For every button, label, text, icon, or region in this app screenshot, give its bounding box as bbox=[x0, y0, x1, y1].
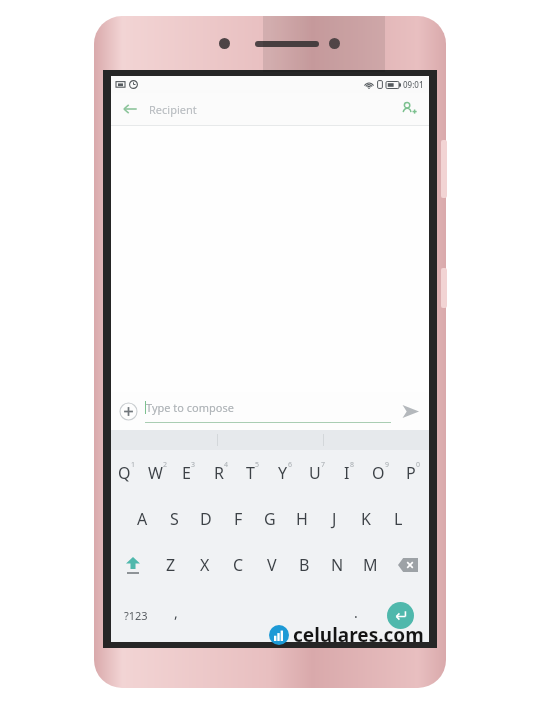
button[interactable]: M bbox=[354, 542, 387, 588]
staticText: K bbox=[361, 508, 371, 530]
staticText: 6 bbox=[288, 460, 293, 470]
staticText: 8 bbox=[350, 460, 355, 470]
button[interactable]: F bbox=[222, 496, 254, 542]
button[interactable]: N bbox=[321, 542, 354, 588]
staticText: C bbox=[233, 554, 244, 576]
button[interactable]: W bbox=[142, 450, 173, 496]
button[interactable]: Space bbox=[190, 588, 340, 642]
staticText: B bbox=[299, 554, 310, 576]
staticText: O bbox=[372, 462, 385, 484]
staticText: H bbox=[296, 508, 308, 530]
button[interactable]: A bbox=[126, 496, 158, 542]
staticText: P bbox=[406, 462, 416, 484]
button[interactable]: Q bbox=[111, 450, 142, 496]
button[interactable]: X bbox=[188, 542, 222, 588]
staticText: G bbox=[264, 508, 276, 530]
button[interactable]: V bbox=[255, 542, 288, 588]
button[interactable]: P bbox=[397, 450, 429, 496]
button[interactable]: H bbox=[286, 496, 318, 542]
button[interactable]: Add recipient bbox=[389, 93, 429, 125]
staticText: T bbox=[246, 462, 255, 484]
button[interactable]: B bbox=[288, 542, 321, 588]
staticText: W bbox=[148, 462, 163, 484]
staticText: M bbox=[363, 554, 378, 576]
button[interactable]: K bbox=[350, 496, 382, 542]
staticText: L bbox=[394, 508, 403, 530]
button[interactable]: Add attachment bbox=[111, 394, 145, 428]
staticText: 09:01 bbox=[403, 79, 424, 90]
staticText: D bbox=[200, 508, 212, 530]
staticText: Recipient bbox=[149, 102, 389, 117]
button[interactable]: D bbox=[190, 496, 222, 542]
staticText: 3 bbox=[191, 460, 196, 470]
staticText: I bbox=[344, 462, 350, 484]
staticText: . bbox=[354, 603, 358, 622]
staticText: Q bbox=[118, 462, 131, 484]
staticText: A bbox=[137, 508, 148, 530]
staticText: 1 bbox=[131, 460, 136, 470]
button[interactable]: Send bbox=[391, 392, 429, 430]
button[interactable]: L bbox=[382, 496, 414, 542]
button[interactable]: Backspace bbox=[387, 542, 429, 588]
button[interactable]: Type to compose bbox=[145, 392, 391, 430]
other: Volume bbox=[441, 140, 447, 198]
staticText: S bbox=[170, 508, 179, 530]
button[interactable]: O bbox=[365, 450, 397, 496]
staticText: 5 bbox=[255, 460, 260, 470]
staticText: celulares.com bbox=[293, 622, 424, 648]
staticText: 2 bbox=[163, 460, 168, 470]
staticText: U bbox=[309, 462, 321, 484]
staticText: E bbox=[182, 462, 191, 484]
staticText: , bbox=[174, 603, 178, 622]
button[interactable]: G bbox=[254, 496, 286, 542]
button[interactable]: I bbox=[333, 450, 365, 496]
button[interactable]: . bbox=[340, 588, 372, 642]
staticText: R bbox=[214, 462, 224, 484]
staticText: 7 bbox=[321, 460, 326, 470]
button[interactable]: J bbox=[318, 496, 350, 542]
button[interactable]: Shift bbox=[111, 542, 154, 588]
button[interactable]: R bbox=[205, 450, 237, 496]
staticText: Type to compose bbox=[146, 400, 234, 415]
staticText: 0 bbox=[416, 460, 421, 470]
staticText: Z bbox=[166, 554, 176, 576]
button[interactable]: C bbox=[222, 542, 255, 588]
staticText: 9 bbox=[385, 460, 390, 470]
button[interactable]: S bbox=[158, 496, 190, 542]
staticText: Y bbox=[278, 462, 288, 484]
button[interactable]: ?123 bbox=[111, 588, 161, 642]
button[interactable]: E bbox=[173, 450, 205, 496]
other: Power bbox=[441, 268, 447, 308]
button[interactable]: Y bbox=[269, 450, 301, 496]
button[interactable]: U bbox=[301, 450, 333, 496]
staticText: J bbox=[332, 508, 337, 530]
staticText: N bbox=[331, 554, 344, 576]
button[interactable]: Back bbox=[111, 93, 149, 125]
staticText: V bbox=[267, 554, 277, 576]
button[interactable]: Z bbox=[154, 542, 188, 588]
staticText: F bbox=[234, 508, 243, 530]
button[interactable]: T bbox=[237, 450, 269, 496]
staticText: 4 bbox=[224, 460, 229, 470]
staticText: X bbox=[200, 554, 210, 576]
button[interactable]: , bbox=[161, 588, 190, 642]
button[interactable]: Enter bbox=[372, 588, 429, 642]
staticText: ?123 bbox=[124, 608, 148, 623]
